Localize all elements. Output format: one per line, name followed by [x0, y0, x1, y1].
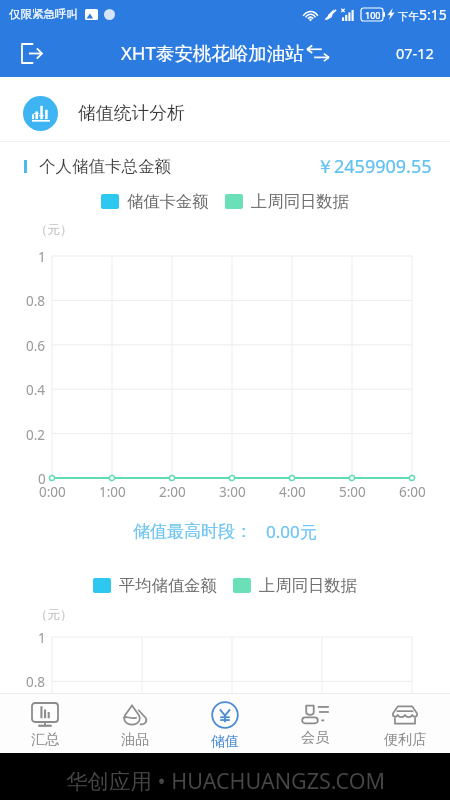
staticText: 汇总 — [31, 731, 59, 749]
staticText: 上周同日数据 — [259, 575, 357, 595]
staticText: 07-12 — [396, 43, 434, 63]
staticText: 储值统计分析 — [78, 102, 185, 124]
button[interactable]: 油品 — [90, 694, 180, 753]
staticText: 储值卡金额 — [127, 191, 209, 211]
staticText: 0.2 — [26, 426, 46, 444]
staticText: 6:00 — [399, 483, 426, 501]
staticText: 4:00 — [279, 483, 306, 501]
staticText: 3:00 — [219, 483, 246, 501]
staticText: 个人储值卡总金额 — [39, 156, 171, 177]
staticText: 0.8 — [26, 292, 46, 310]
button[interactable]: 汇总 — [0, 694, 90, 753]
staticText: 平均储值金额 — [119, 575, 217, 595]
staticText: 0.6 — [26, 337, 46, 355]
staticText: 仅限紧急呼叫 — [9, 7, 78, 21]
staticText: 会员 — [301, 729, 329, 747]
button[interactable]: 会员 — [270, 694, 360, 753]
staticText: 油品 — [121, 731, 149, 749]
staticText: 0:00 — [39, 483, 66, 501]
button[interactable]: 退出 — [14, 35, 50, 71]
staticText: 便利店 — [384, 731, 426, 749]
button[interactable]: 便利店 — [360, 694, 450, 753]
button[interactable]: 储值统计分析 — [0, 77, 450, 149]
staticText: 储值最高时段： — [133, 521, 252, 542]
staticText: 2:00 — [159, 483, 186, 501]
staticText: 5:00 — [339, 483, 366, 501]
staticText: 0.8 — [26, 673, 46, 691]
staticText: XHT泰安桃花峪加油站 — [121, 40, 304, 65]
staticText: 0.4 — [26, 381, 46, 399]
button[interactable]: 储值 — [180, 694, 270, 753]
staticText: 1 — [38, 248, 46, 266]
staticText: 1:00 — [99, 483, 126, 501]
staticText: ￥2459909.55 — [316, 154, 432, 179]
staticText: 5:15 — [419, 5, 447, 24]
staticText: 0.00元 — [266, 520, 317, 543]
staticText: 下午 — [398, 10, 419, 23]
staticText: 1 — [38, 629, 46, 647]
staticText: （元） — [35, 222, 73, 238]
staticText: （元） — [35, 607, 73, 623]
staticText: 0 — [38, 470, 46, 488]
staticText: 100 — [365, 9, 381, 21]
staticText: 上周同日数据 — [251, 191, 349, 211]
staticText: 华创应用 • HUACHUANGZS.COM — [66, 766, 385, 795]
staticText: 储值 — [211, 733, 239, 751]
